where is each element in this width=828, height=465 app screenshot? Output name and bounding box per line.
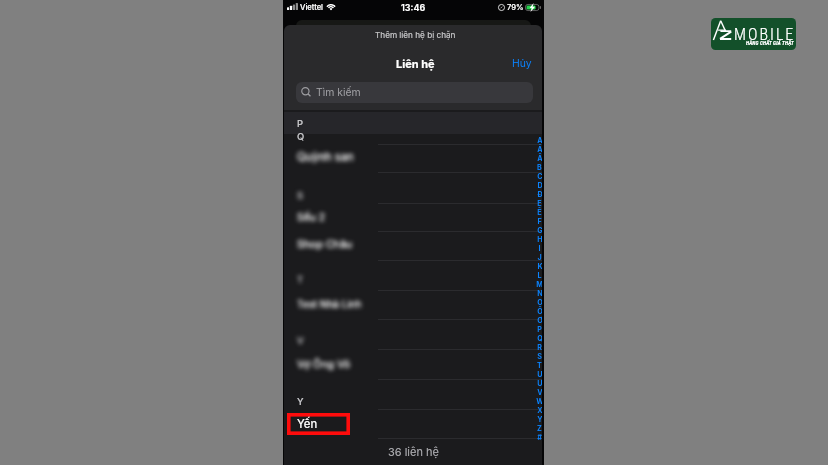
button[interactable]: Shop Châu bbox=[284, 232, 542, 256]
staticText: V bbox=[297, 335, 304, 346]
staticText: C bbox=[537, 172, 542, 181]
staticText: Tìm kiếm bbox=[316, 86, 361, 99]
other: AZ Mobile logo bbox=[711, 18, 796, 50]
staticText: A bbox=[537, 136, 542, 145]
staticText: M bbox=[536, 280, 542, 289]
staticText: # bbox=[537, 433, 542, 442]
staticText: Test Nhà Linh bbox=[297, 298, 362, 310]
staticText: Â bbox=[537, 154, 542, 163]
staticText: Đ bbox=[537, 190, 542, 199]
staticText: V bbox=[537, 388, 542, 397]
staticText: Ô bbox=[537, 307, 542, 316]
button[interactable]: Hủy bbox=[508, 54, 536, 72]
button[interactable]: Vợ Ông Võ bbox=[284, 352, 542, 376]
staticText: Vợ Ông Võ bbox=[297, 358, 351, 371]
staticText: D bbox=[537, 181, 542, 190]
staticText: E bbox=[537, 199, 542, 208]
staticText: U bbox=[537, 370, 542, 379]
staticText: P bbox=[537, 325, 542, 334]
staticText: Q bbox=[537, 334, 542, 343]
staticText: L bbox=[537, 271, 542, 280]
staticText: Ơ bbox=[537, 316, 542, 325]
staticText: HÀNG CHẤT GIÁ THẬT bbox=[746, 40, 794, 46]
staticText: 79% bbox=[507, 3, 524, 12]
staticText: Shop Châu bbox=[297, 238, 353, 251]
staticText: Q bbox=[297, 131, 305, 142]
staticText: Ư bbox=[537, 379, 542, 388]
staticText: MOBILE bbox=[734, 25, 796, 44]
staticText: Y bbox=[537, 415, 542, 424]
staticText: X bbox=[537, 406, 542, 415]
staticText: N bbox=[537, 289, 542, 298]
staticText: S bbox=[297, 190, 304, 201]
staticText: Thêm liên hệ bị chặn bbox=[375, 30, 456, 40]
staticText: Z bbox=[537, 424, 542, 433]
button[interactable]: Yến bbox=[284, 409, 542, 438]
staticText: Viettel bbox=[300, 3, 324, 12]
button[interactable]: Alphabet index bbox=[531, 136, 542, 442]
staticText: Hủy bbox=[512, 57, 532, 70]
staticText: K bbox=[537, 262, 542, 271]
staticText: Sếu 2 bbox=[297, 211, 326, 224]
button[interactable]: Quỳnh san bbox=[284, 145, 542, 169]
staticText: Liên hệ bbox=[396, 57, 435, 70]
staticText: J bbox=[537, 253, 542, 262]
staticText: F bbox=[537, 217, 542, 226]
staticText: T bbox=[297, 274, 304, 285]
staticText: 13:46 bbox=[401, 2, 426, 13]
button[interactable]: Sếu 2 bbox=[284, 205, 542, 229]
button[interactable]: Tìm kiếm bbox=[296, 82, 533, 103]
button[interactable]: Test Nhà Linh bbox=[284, 292, 542, 316]
staticText: Y bbox=[297, 396, 304, 407]
staticText: B bbox=[537, 163, 542, 172]
staticText: R bbox=[537, 343, 542, 352]
staticText: G bbox=[537, 226, 542, 235]
staticText: Quỳnh san bbox=[297, 150, 354, 164]
staticText: O bbox=[537, 298, 542, 307]
staticText: 36 liên hệ bbox=[388, 445, 439, 458]
staticText: Ă bbox=[537, 145, 542, 154]
staticText: I bbox=[538, 244, 541, 253]
staticText: T bbox=[537, 361, 542, 370]
staticText: Yến bbox=[297, 417, 318, 431]
staticText: Ê bbox=[537, 208, 542, 217]
staticText: P bbox=[297, 118, 304, 129]
staticText: W bbox=[536, 397, 542, 406]
staticText: S bbox=[537, 352, 542, 361]
staticText: H bbox=[537, 235, 542, 244]
